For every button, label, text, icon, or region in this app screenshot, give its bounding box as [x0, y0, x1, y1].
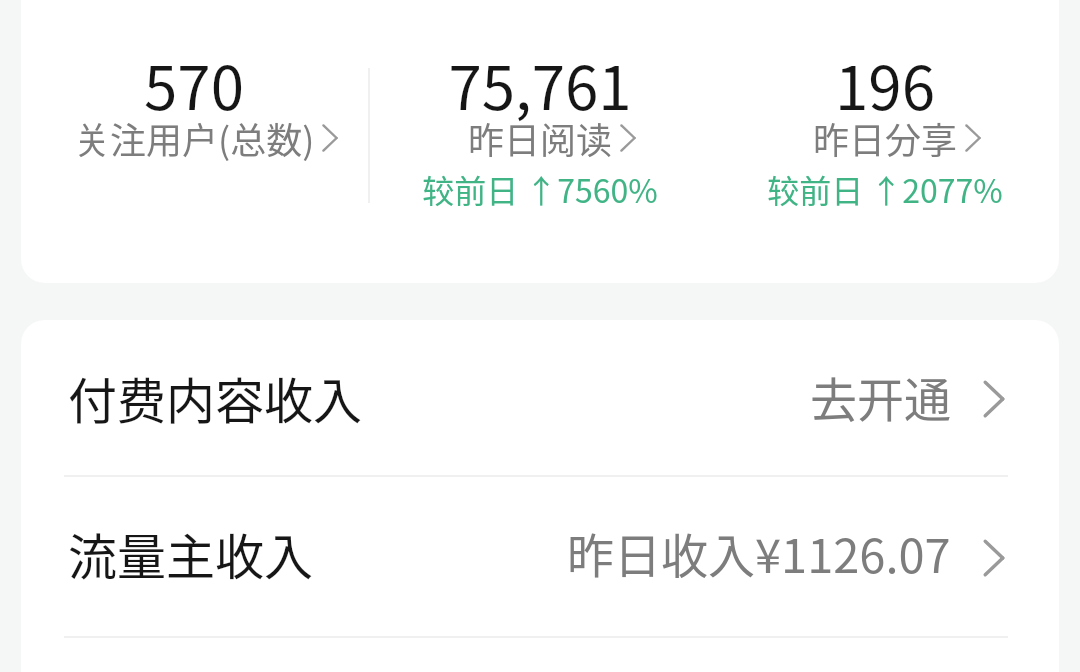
other: 流量主收入	[974, 538, 1014, 578]
staticText: 去开通	[810, 362, 951, 430]
button[interactable]: 付费内容收入	[21, 320, 1059, 475]
staticText: 较前日 ↑2077%	[715, 166, 1055, 212]
button[interactable]: 196	[715, 20, 1055, 220]
staticText: 570	[24, 40, 364, 127]
staticText: 关注用户(总数)	[74, 112, 315, 164]
staticText: 流量主收入	[68, 518, 314, 589]
staticText: 75,761	[370, 40, 710, 127]
button[interactable]: 流量主收入	[21, 477, 1059, 636]
button[interactable]: 75,761	[370, 20, 710, 220]
other: 昨日分享	[958, 123, 988, 153]
staticText: 较前日 ↑7560%	[370, 166, 710, 212]
staticText: 付费内容收入	[68, 362, 363, 433]
staticText: 196	[715, 40, 1055, 127]
other: 关注用户(总数)	[315, 123, 345, 153]
staticText: 昨日收入¥1126.07	[567, 518, 951, 586]
staticText: 昨日分享	[813, 112, 958, 164]
other: 昨日阅读	[613, 123, 643, 153]
other: 付费内容收入	[974, 379, 1014, 419]
staticText: 昨日阅读	[468, 112, 613, 164]
button[interactable]: 570	[24, 20, 364, 220]
